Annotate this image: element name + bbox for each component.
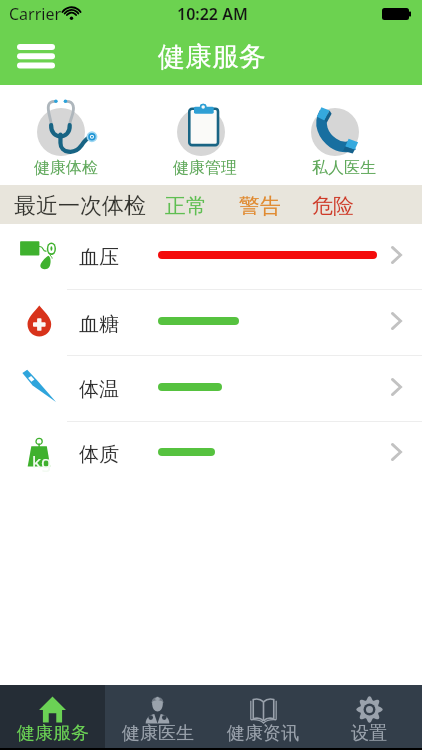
staticText: 健康体检 [34, 158, 98, 178]
button[interactable]: 血压 [0, 224, 422, 289]
staticText: 10:22 AM [177, 3, 248, 25]
staticText: 健康服务 [17, 722, 89, 745]
staticText: 体温 [79, 377, 119, 402]
button[interactable]: 健康医生 [105, 685, 210, 748]
button[interactable]: 血糖 [0, 290, 422, 355]
staticText: 正常 [165, 193, 207, 219]
staticText: 健康医生 [122, 722, 194, 745]
staticText: 最近一次体检 [14, 192, 146, 220]
staticText: 健康服务 [158, 40, 266, 74]
button[interactable]: 设置 [316, 685, 422, 748]
button[interactable]: 健康资讯 [210, 685, 316, 748]
staticText: 危险 [312, 193, 354, 219]
button[interactable]: Menu [14, 35, 58, 79]
staticText: 警告 [239, 193, 281, 219]
button[interactable]: 健康服务 [0, 685, 105, 748]
button[interactable]: 体温 [0, 356, 422, 421]
staticText: 设置 [351, 722, 387, 745]
staticText: 血糖 [79, 312, 119, 337]
button[interactable]: 健康体检 [2, 85, 130, 185]
staticText: 健康管理 [173, 158, 237, 178]
staticText: 血压 [79, 245, 119, 270]
button[interactable]: 私人医生 [280, 85, 408, 185]
button[interactable]: 健康管理 [141, 85, 269, 185]
button[interactable]: kg [0, 422, 422, 487]
staticText: Carrier [9, 3, 62, 25]
staticText: kg [32, 450, 52, 473]
staticText: 体质 [79, 442, 119, 467]
staticText: 私人医生 [312, 158, 376, 178]
staticText: 健康资讯 [227, 722, 299, 745]
